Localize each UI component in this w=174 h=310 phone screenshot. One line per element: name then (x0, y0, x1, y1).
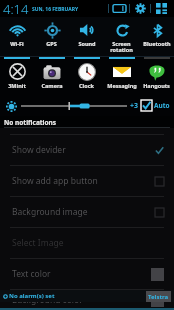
staticText: SUN, 16 FEBRUARY (32, 6, 79, 13)
staticText: Wi-Fi (10, 40, 24, 47)
button[interactable]: Brightness slider (21, 99, 127, 113)
button[interactable]: Clock (69, 57, 104, 95)
staticText: Show devider (12, 144, 66, 156)
button[interactable]: Background color (0, 289, 174, 310)
button[interactable]: Auto brightness (141, 100, 152, 111)
button[interactable]: Screen rotation (104, 17, 139, 57)
staticText: 3Minit (8, 82, 26, 89)
staticText: Background image (12, 206, 88, 218)
button[interactable]: Recents (109, 0, 129, 17)
staticText: Clock (79, 82, 94, 89)
staticText: Text color (12, 268, 51, 280)
staticText: Telstra (148, 293, 169, 301)
staticText: Screen rotation (110, 40, 133, 53)
staticText: Hangouts (143, 82, 170, 89)
staticText: Quicklauncher Settings (12, 17, 110, 29)
staticText: GPS (46, 40, 57, 47)
button[interactable]: 3Minit (0, 57, 34, 95)
button[interactable]: Camera (34, 57, 69, 95)
button[interactable]: Quick settings (151, 0, 171, 17)
button[interactable]: Show add app button (0, 165, 174, 196)
staticText: Messaging (107, 82, 137, 89)
button[interactable]: Bluetooth (139, 17, 174, 57)
button[interactable]: Text color (0, 258, 174, 289)
staticText: +3 (130, 101, 139, 111)
button[interactable]: Settings (130, 0, 150, 17)
staticText: Select Image (12, 237, 64, 249)
staticText: Bluetooth (143, 40, 171, 47)
button[interactable]: Hangouts (139, 57, 174, 95)
button[interactable]: Background image (0, 196, 174, 227)
staticText: Show add app button (12, 175, 98, 187)
button[interactable]: Show devider (0, 134, 174, 165)
staticText: Number of visible buttons (12, 103, 110, 114)
button[interactable]: Wi-Fi (0, 17, 34, 57)
button[interactable]: Sound (69, 17, 104, 57)
button[interactable]: Messaging (104, 57, 139, 95)
button[interactable]: Brightness (4, 99, 18, 113)
staticText: Camera (41, 82, 63, 89)
button[interactable]: GPS (34, 17, 69, 57)
staticText: Auto (154, 101, 170, 110)
button[interactable]: Select Image (0, 227, 174, 258)
staticText: Sound (78, 40, 96, 47)
staticText: No notifications (4, 118, 57, 127)
staticText: 4:14 (3, 0, 29, 17)
staticText: No alarm(s) set (9, 292, 55, 300)
staticText: Background color (12, 294, 83, 306)
staticText: Show app text (12, 66, 66, 77)
